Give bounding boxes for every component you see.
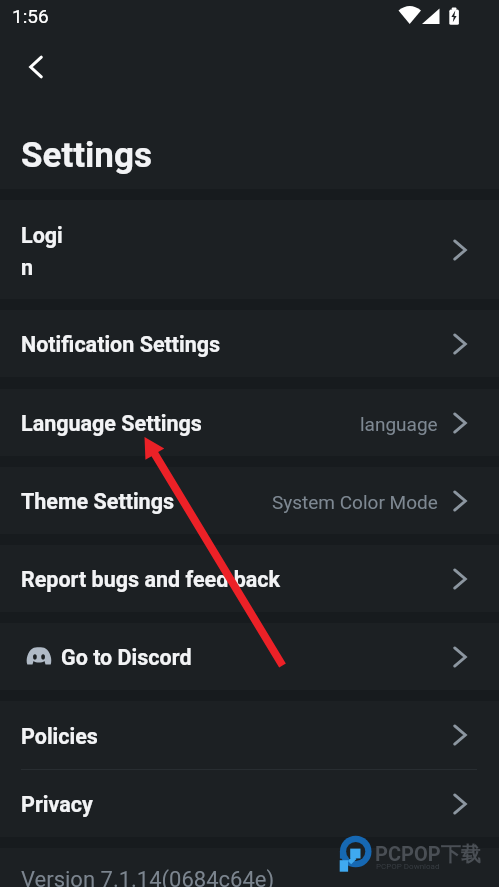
staticText: Privacy xyxy=(21,792,93,817)
staticText: Policies xyxy=(21,724,98,749)
staticText: Go to Discord xyxy=(61,645,192,670)
staticText: Theme Settings xyxy=(21,489,175,514)
staticText: 1:56 xyxy=(12,5,49,27)
staticText: n xyxy=(21,255,34,280)
staticText: Language Settings xyxy=(21,411,202,436)
button[interactable]: Language Settings xyxy=(0,389,499,456)
button[interactable]: Go to Discord xyxy=(0,623,499,690)
button[interactable]: Logi xyxy=(0,200,499,299)
staticText: Version 7.1.14(0684c64e) xyxy=(21,867,275,887)
staticText: language xyxy=(360,413,438,435)
button[interactable]: Back xyxy=(8,39,64,95)
button[interactable]: Policies xyxy=(0,701,499,769)
button[interactable]: Theme Settings xyxy=(0,467,499,534)
staticText: PCPOP Download xyxy=(376,862,440,871)
staticText: Notification Settings xyxy=(21,332,221,357)
staticText: PCPOP下载 xyxy=(375,842,481,867)
button[interactable]: Notification Settings xyxy=(0,310,499,377)
staticText: Logi xyxy=(21,223,63,248)
button[interactable]: Report bugs and feed back xyxy=(0,545,499,612)
staticText: Settings xyxy=(21,135,152,176)
staticText: Report bugs and feed back xyxy=(21,567,281,592)
staticText: System Color Mode xyxy=(272,491,438,513)
button[interactable]: Privacy xyxy=(0,770,499,837)
